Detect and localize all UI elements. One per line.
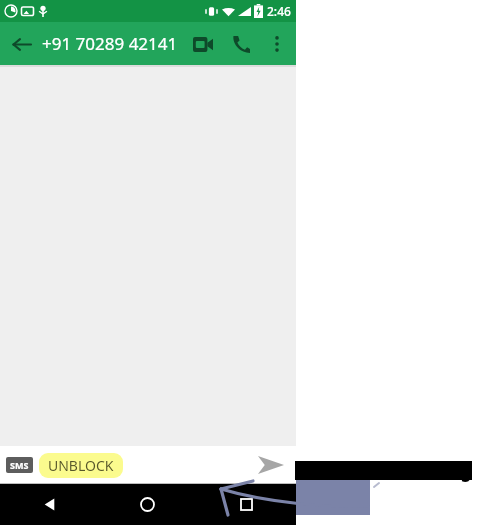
button[interactable]: Home bbox=[98, 484, 197, 525]
button[interactable]: UNBLOCK bbox=[48, 456, 114, 475]
staticText: s bbox=[461, 462, 471, 488]
button[interactable]: Navigate up bbox=[0, 23, 42, 65]
button[interactable]: Video call bbox=[184, 25, 222, 63]
button[interactable]: Send bbox=[254, 448, 288, 482]
staticText: SMS bbox=[10, 459, 29, 471]
button[interactable]: Recent apps bbox=[197, 484, 296, 525]
staticText: S bbox=[294, 458, 306, 487]
button[interactable]: Back bbox=[0, 484, 98, 525]
staticText: +91 70289 42141 bbox=[42, 32, 178, 55]
button[interactable]: More options bbox=[260, 27, 294, 61]
button[interactable]: SMS bbox=[10, 459, 29, 471]
button[interactable]: Call bbox=[222, 25, 260, 63]
staticText: 2:46 bbox=[267, 3, 291, 19]
staticText: UNBLOCK bbox=[48, 456, 114, 475]
